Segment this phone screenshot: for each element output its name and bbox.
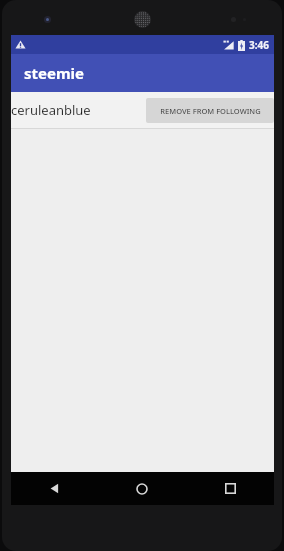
button[interactable]: ceruleanblue <box>11 92 274 128</box>
button[interactable]: Back <box>11 472 98 505</box>
button[interactable]: Home <box>98 472 186 505</box>
staticText: 3:46 <box>249 38 269 52</box>
staticText: ceruleanblue <box>11 101 91 119</box>
staticText: steemie <box>24 63 85 83</box>
button[interactable]: Recent apps <box>186 472 274 505</box>
staticText: REMOVE FROM FOLLOWING <box>160 106 261 116</box>
button[interactable]: REMOVE FROM FOLLOWING <box>146 98 274 123</box>
